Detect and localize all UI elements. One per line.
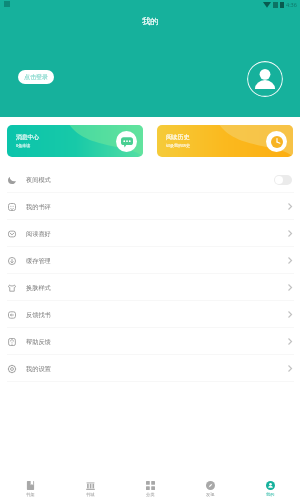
staticText: 发现 <box>206 492 215 497</box>
staticText: 我的 <box>266 492 275 497</box>
staticText: 阅读历史 <box>166 133 190 140</box>
staticText: 0条未读 <box>16 143 31 148</box>
button[interactable]: Profile avatar <box>247 61 283 97</box>
button[interactable]: 反馈找书 <box>0 301 300 328</box>
button[interactable]: 分类 <box>120 472 180 500</box>
button[interactable]: 夜间模式 <box>0 166 300 193</box>
staticText: 缓存管理 <box>26 257 51 265</box>
staticText: 消息中心 <box>16 133 40 140</box>
staticText: 我的书评 <box>26 203 51 211</box>
staticText: 记录我的历史 <box>166 143 190 148</box>
button[interactable]: 我的 <box>240 472 300 500</box>
button[interactable]: 消息中心 <box>7 125 143 157</box>
button[interactable]: 换肤样式 <box>0 274 300 301</box>
button[interactable]: 点击登录 <box>18 70 54 84</box>
button[interactable]: 缓存管理 <box>0 247 300 274</box>
button[interactable]: 帮助反馈 <box>0 328 300 355</box>
staticText: 点击登录 <box>24 73 48 81</box>
staticText: 书架 <box>26 492 35 497</box>
staticText: 我的设置 <box>26 365 51 373</box>
button[interactable]: 书架 <box>0 472 60 500</box>
button[interactable]: 我的设置 <box>0 355 300 382</box>
staticText: 夜间模式 <box>26 176 51 184</box>
staticText: 阅读喜好 <box>26 230 51 238</box>
staticText: 分类 <box>146 492 155 497</box>
staticText: 反馈找书 <box>26 311 51 319</box>
staticText: 我的 <box>142 16 159 26</box>
button[interactable]: 我的书评 <box>0 193 300 220</box>
button[interactable]: 阅读喜好 <box>0 220 300 247</box>
staticText: 4:36 <box>286 1 297 8</box>
button[interactable]: 书城 <box>60 472 120 500</box>
button[interactable]: 发现 <box>180 472 240 500</box>
staticText: 帮助反馈 <box>26 338 51 346</box>
button[interactable]: 阅读历史 <box>157 125 293 157</box>
staticText: 换肤样式 <box>26 284 51 292</box>
staticText: 书城 <box>86 492 95 497</box>
